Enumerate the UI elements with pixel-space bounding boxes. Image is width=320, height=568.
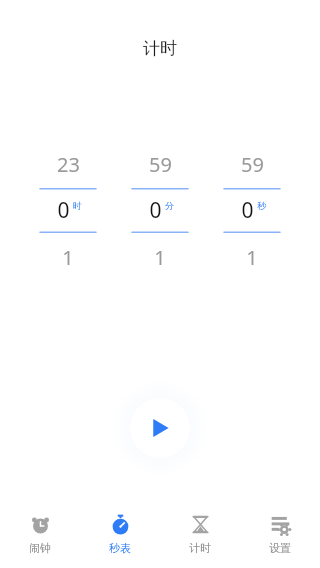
staticText: 1 [154,244,166,271]
staticText: 秒 [257,200,266,211]
staticText: 分 [165,200,174,211]
button[interactable]: 0 [132,188,188,233]
staticText: 0 [149,196,162,225]
staticText: 计时 [189,541,211,555]
staticText: 闹钟 [29,541,51,555]
staticText: 0 [57,196,70,225]
staticText: 0 [241,196,254,225]
staticText: 1 [62,244,74,271]
button[interactable]: 计时 [160,500,240,568]
button[interactable]: 闹钟 [0,500,80,568]
button[interactable]: Start [130,398,190,458]
staticText: 59 [149,151,172,178]
button[interactable]: 0 [224,188,280,233]
staticText: 1 [246,244,258,271]
button[interactable]: 秒表 [80,500,160,568]
button[interactable]: 设置 [240,500,320,568]
staticText: 设置 [269,541,291,555]
staticText: 秒表 [109,541,131,555]
staticText: 计时 [143,38,177,59]
staticText: 59 [241,151,264,178]
button[interactable]: 0 [40,188,96,233]
staticText: 时 [73,200,82,211]
staticText: 23 [57,151,80,178]
